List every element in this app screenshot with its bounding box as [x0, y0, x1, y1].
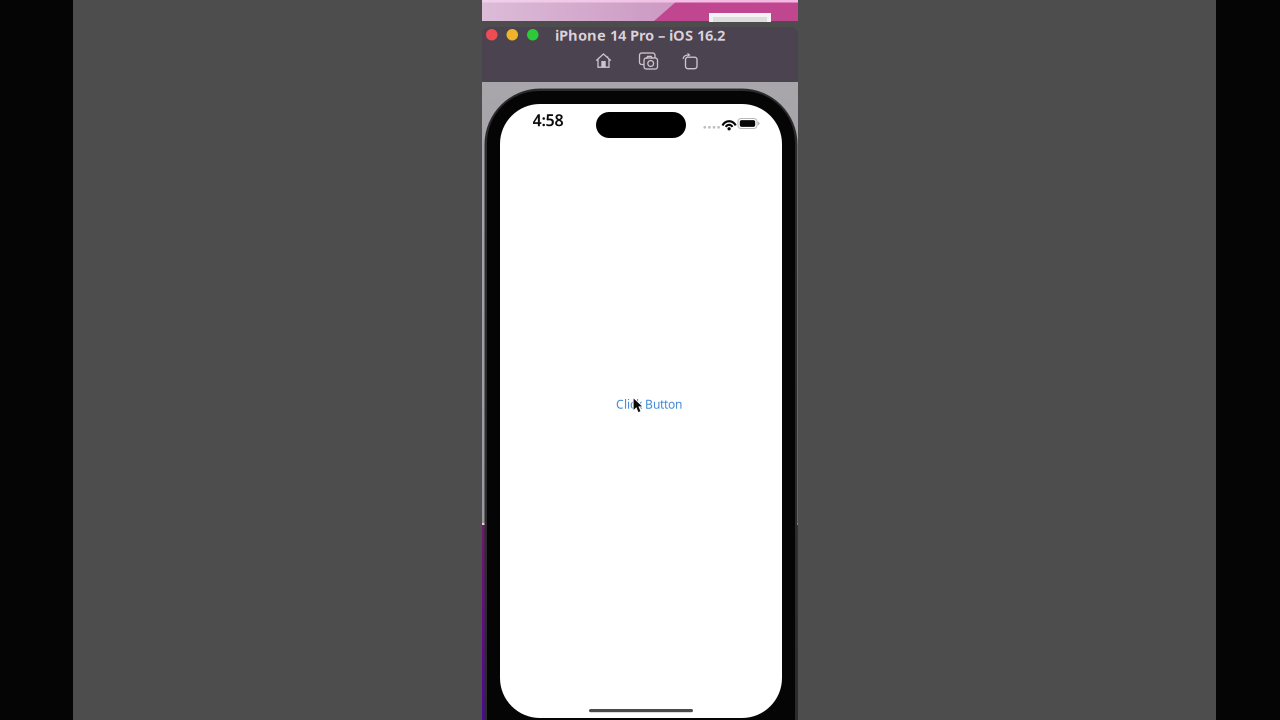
staticText: 4:58	[532, 109, 563, 131]
button[interactable]: Close	[486, 29, 497, 40]
button[interactable]: Full Screen	[527, 29, 538, 40]
staticText: iPhone 14 Pro – iOS 16.2	[555, 25, 725, 45]
button[interactable]: Click Button	[611, 397, 687, 411]
staticText: Click Button	[616, 396, 682, 412]
button[interactable]: Home	[595, 53, 611, 68]
button[interactable]: Screenshot	[639, 52, 658, 70]
button[interactable]: Rotate	[682, 52, 697, 70]
button[interactable]: Minimize	[506, 29, 518, 40]
